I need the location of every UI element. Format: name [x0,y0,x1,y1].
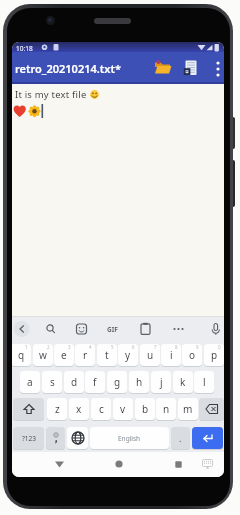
staticText: s [50,375,55,389]
staticText: It is my text file [15,88,90,101]
staticText: k [180,375,186,389]
staticText: z [55,402,60,416]
staticText: u [147,348,154,362]
button[interactable]: j [151,371,171,393]
staticText: l [203,375,206,389]
button[interactable]: o [182,344,202,366]
button[interactable]: f [85,371,105,393]
staticText: j [160,375,163,389]
staticText: 4 [89,344,92,350]
staticText: q [18,348,25,362]
button[interactable]: r [75,344,95,366]
button[interactable]: c [91,398,111,420]
staticText: 2 [47,344,50,350]
button[interactable]: t [97,344,117,366]
staticText: r [83,348,88,362]
button[interactable]: q [12,344,31,366]
staticText: d [71,375,78,389]
staticText: n [163,402,170,416]
button[interactable] [13,398,44,420]
button[interactable] [210,58,224,78]
staticText: a [27,375,33,389]
button[interactable]: w [33,344,53,366]
button[interactable]: i [161,344,181,366]
button[interactable] [192,427,223,449]
staticText: v [120,402,126,416]
button[interactable]: l [194,371,214,393]
button[interactable] [67,427,88,449]
staticText: x [76,402,82,416]
staticText: e [61,348,67,362]
staticText: ?123 [22,434,36,443]
staticText: English [118,434,141,443]
staticText: c [99,402,104,416]
staticText: 7 [154,344,157,350]
staticText: o [189,348,196,362]
staticText: 6 [132,344,135,350]
button[interactable]: h [129,371,149,393]
button[interactable] [110,454,128,474]
button[interactable]: p [204,344,224,366]
button[interactable]: v [113,398,133,420]
button[interactable]: . [171,427,190,449]
staticText: y [125,348,131,362]
button[interactable]: y [118,344,138,366]
staticText: m [183,402,193,416]
button[interactable]: u [140,344,160,366]
button[interactable] [183,59,201,77]
button[interactable]: k [173,371,193,393]
button[interactable]: m [178,398,198,420]
staticText: i [170,348,173,362]
staticText: . [179,432,182,444]
staticText: f [93,375,97,389]
staticText: h [136,375,143,389]
staticText: 8 [175,344,178,350]
staticText: GIF [107,325,118,334]
button[interactable]: ?123 [13,427,44,449]
staticText: g [114,375,121,389]
staticText: b [142,402,149,416]
staticText: p [211,348,218,362]
staticText: t [105,348,109,362]
staticText: 0 [218,344,221,350]
button[interactable]: b [135,398,155,420]
button[interactable]: s [42,371,62,393]
staticText: 10:18 [16,44,33,53]
button[interactable]: x [69,398,89,420]
button[interactable]: English [90,427,169,449]
button[interactable] [169,454,187,474]
button[interactable] [50,454,68,474]
button[interactable]: d [64,371,84,393]
button[interactable] [199,398,224,420]
staticText: 3 [68,344,71,350]
staticText: 9 [196,344,199,350]
button[interactable]: z [47,398,67,420]
button[interactable]: g [107,371,127,393]
staticText: 5 [111,344,114,350]
button[interactable] [46,427,65,449]
button[interactable] [153,58,173,78]
staticText: retro_20210214.txt* [15,61,121,76]
staticText: w [39,348,47,362]
button[interactable]: a [20,371,40,393]
staticText: 1 [25,344,28,350]
button[interactable]: e [54,344,74,366]
button[interactable]: n [156,398,176,420]
